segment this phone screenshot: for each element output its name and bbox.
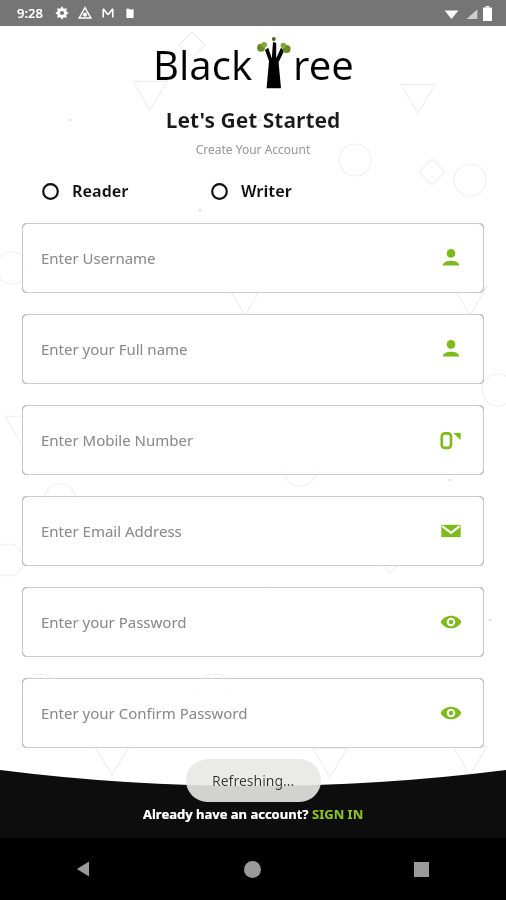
- other: Show password: [439, 701, 463, 725]
- button[interactable]: Enter your Confirm Password: [22, 678, 484, 748]
- button[interactable]: Reader: [40, 176, 131, 206]
- staticText: Reader: [72, 180, 129, 202]
- staticText: Already have an account?: [143, 805, 312, 823]
- staticText: Enter Mobile Number: [41, 430, 194, 450]
- staticText: Enter Email Address: [41, 521, 182, 541]
- staticText: Create Your Account: [0, 141, 506, 157]
- button[interactable]: Enter Username: [22, 223, 484, 293]
- other: Email: [439, 519, 463, 543]
- staticText: Enter your Full name: [41, 339, 188, 359]
- staticText: Refreshing...: [212, 771, 295, 790]
- button[interactable]: Enter Email Address: [22, 496, 484, 566]
- button[interactable]: Enter Mobile Number: [22, 405, 484, 475]
- button[interactable]: Back: [0, 838, 168, 900]
- other: Person: [439, 337, 463, 361]
- button[interactable]: Already have an account?: [137, 803, 370, 825]
- staticText: Enter your Password: [41, 612, 187, 632]
- other: Show password: [439, 610, 463, 634]
- staticText: Black: [153, 37, 253, 91]
- staticText: Writer: [241, 180, 292, 202]
- other: Mobile number: [439, 428, 463, 452]
- staticText: Let's Get Started: [0, 106, 506, 135]
- button[interactable]: Writer: [209, 176, 294, 206]
- staticText: ree: [293, 37, 354, 91]
- other: Person: [439, 246, 463, 270]
- button[interactable]: Enter your Password: [22, 587, 484, 657]
- button[interactable]: Home: [168, 838, 337, 900]
- staticText: 9:28: [17, 4, 43, 22]
- staticText: Enter Username: [41, 248, 156, 268]
- staticText: Enter your Confirm Password: [41, 703, 248, 723]
- button[interactable]: Recent apps: [337, 838, 506, 900]
- staticText: SIGN IN: [312, 805, 364, 823]
- button[interactable]: Enter your Full name: [22, 314, 484, 384]
